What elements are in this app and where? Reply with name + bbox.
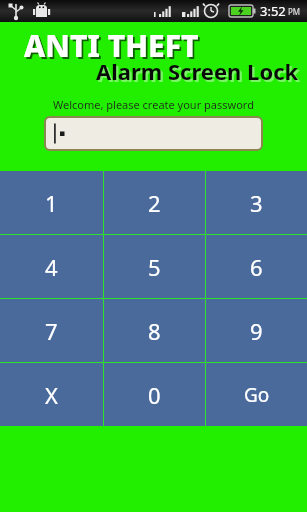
button[interactable]: X [0, 363, 103, 426]
staticText: Alarm Screen Lock [98, 58, 301, 88]
button[interactable]: 4 [0, 235, 103, 298]
staticText: 8 [148, 316, 161, 346]
staticText: Welcome, please create your password [53, 97, 254, 112]
button[interactable]: 9 [206, 299, 307, 362]
button[interactable]: 8 [104, 299, 205, 362]
staticText: 6 [250, 252, 263, 282]
button[interactable]: Go [206, 363, 307, 426]
staticText: 0 [148, 380, 161, 410]
staticText: Alarm Screen Lock [96, 56, 299, 86]
staticText: ANTI THEFT [26, 27, 201, 68]
staticText: 1 [45, 188, 58, 218]
button[interactable]: 5 [104, 235, 205, 298]
button[interactable]: 3 [206, 171, 307, 234]
button[interactable]: 7 [0, 299, 103, 362]
staticText: 9 [250, 316, 263, 346]
button[interactable]: 6 [206, 235, 307, 298]
staticText: 3:52 [260, 2, 286, 20]
staticText: 4 [45, 252, 58, 282]
staticText: 3 [250, 188, 263, 218]
staticText: ANTI THEFT [24, 25, 199, 66]
staticText: X [45, 380, 58, 410]
staticText: 5 [148, 252, 161, 282]
button[interactable]: 1 [0, 171, 103, 234]
staticText: 2 [148, 188, 161, 218]
staticText: Go [244, 382, 270, 408]
staticText: PM [288, 6, 301, 17]
staticText: 7 [45, 316, 58, 346]
button[interactable]: 0 [104, 363, 205, 426]
button[interactable] [46, 118, 261, 149]
button[interactable]: 2 [104, 171, 205, 234]
